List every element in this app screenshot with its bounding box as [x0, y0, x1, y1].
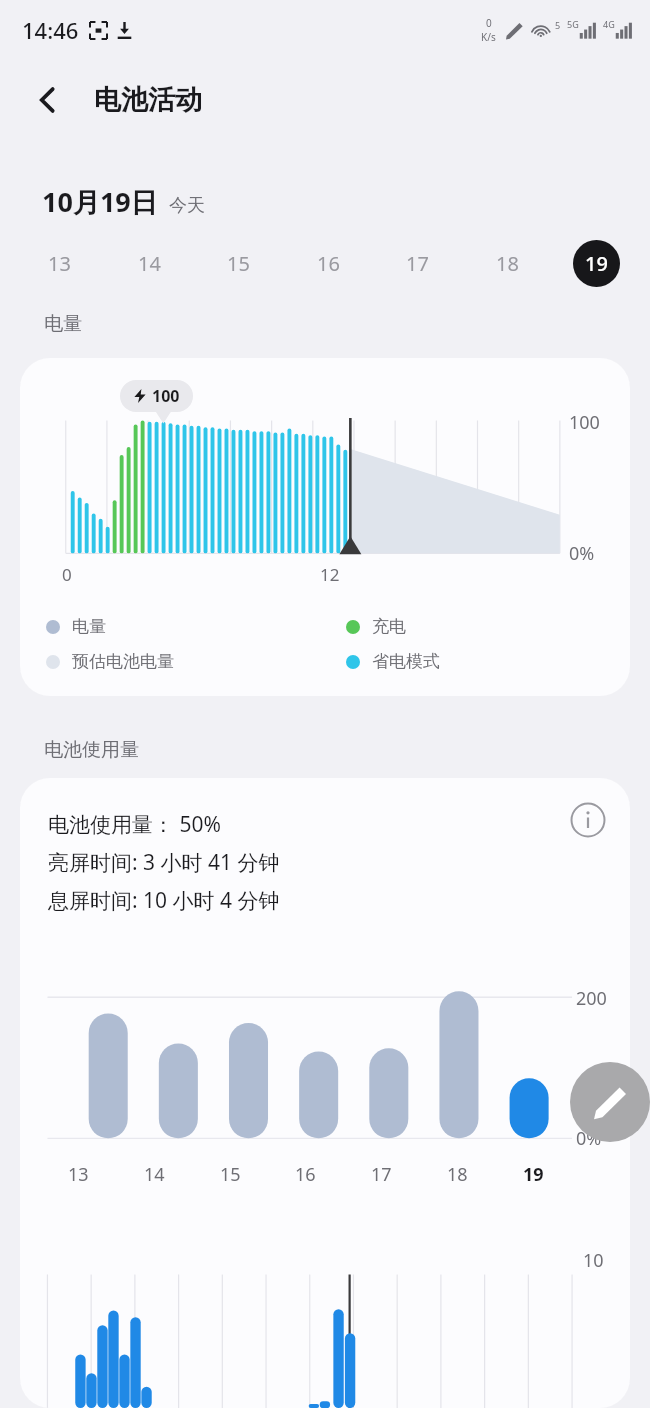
button[interactable]: Edit [570, 1062, 650, 1142]
staticText: 17 [406, 250, 429, 277]
staticText: 电量 [72, 616, 106, 637]
staticText: 16 [317, 250, 340, 277]
staticText: 预估电池电量 [72, 651, 174, 672]
staticText: 14 [138, 250, 161, 277]
staticText: 0 [62, 563, 72, 586]
button[interactable]: 100 [20, 358, 630, 696]
staticText: 13 [48, 250, 71, 277]
staticText: 19 [585, 250, 608, 277]
staticText: 今天 [169, 194, 205, 217]
button[interactable]: 13 [36, 240, 83, 287]
staticText: 12 [320, 563, 340, 586]
staticText: 5 [555, 19, 561, 31]
staticText: 17 [371, 1162, 392, 1187]
staticText: 0% [576, 1126, 602, 1151]
staticText: 14 [144, 1162, 165, 1187]
staticText: 0% [569, 541, 595, 566]
staticText: K/s [481, 30, 496, 44]
staticText: 息屏时间: 10 小时 4 分钟 [48, 886, 280, 915]
staticText: 0 [486, 16, 492, 30]
staticText: 200 [576, 986, 607, 1011]
staticText: 电池使用量 [44, 738, 139, 762]
button[interactable]: Information [560, 792, 616, 848]
staticText: 电池活动 [94, 83, 202, 117]
staticText: 充电 [372, 616, 406, 637]
staticText: 电池使用量： 50% [48, 810, 221, 839]
staticText: 电量 [44, 312, 82, 336]
button[interactable]: 18 [484, 240, 531, 287]
button[interactable]: 14 [126, 240, 173, 287]
staticText: 15 [227, 250, 250, 277]
button[interactable]: 15 [215, 240, 262, 287]
staticText: 14:46 [22, 15, 79, 45]
button[interactable]: 17 [394, 240, 441, 287]
button[interactable]: Back [20, 72, 76, 128]
staticText: 100 [152, 385, 180, 407]
staticText: 亮屏时间: 3 小时 41 分钟 [48, 848, 280, 877]
button[interactable]: 电池使用量： 50% [20, 778, 630, 1408]
staticText: 5G [567, 18, 579, 30]
staticText: 13 [68, 1162, 89, 1187]
staticText: 10 [583, 1248, 604, 1273]
staticText: 16 [295, 1162, 316, 1187]
staticText: 10月19日 [42, 183, 158, 220]
button[interactable]: 16 [305, 240, 352, 287]
staticText: 15 [220, 1162, 241, 1187]
staticText: 100 [569, 410, 600, 435]
staticText: 18 [447, 1162, 468, 1187]
staticText: 19 [523, 1162, 544, 1187]
staticText: 4G [603, 18, 615, 30]
button[interactable]: 19 [573, 240, 620, 287]
staticText: 省电模式 [372, 651, 440, 672]
staticText: 18 [496, 250, 519, 277]
